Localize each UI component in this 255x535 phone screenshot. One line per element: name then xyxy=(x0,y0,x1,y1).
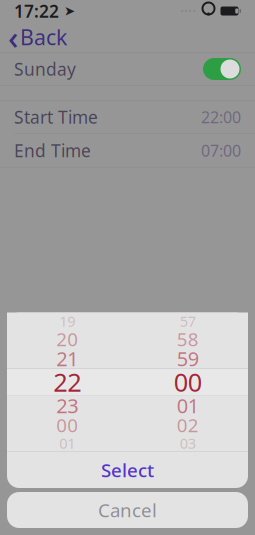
button[interactable]: Select xyxy=(7,452,248,488)
staticText: Select xyxy=(101,458,154,482)
staticText: 22 xyxy=(53,365,81,399)
staticText: 19 xyxy=(59,311,75,331)
staticText: 57 xyxy=(180,311,196,331)
staticText: Sunday xyxy=(14,57,76,80)
staticText: 07:00 xyxy=(201,140,241,161)
staticText: 20 xyxy=(56,327,78,351)
staticText: 00 xyxy=(56,413,78,437)
button[interactable]: End Time xyxy=(0,134,255,167)
staticText: ‹ xyxy=(8,16,18,58)
staticText: ➤ xyxy=(59,3,75,18)
staticText: 58 xyxy=(177,327,199,351)
button[interactable]: Start Time xyxy=(0,100,255,133)
staticText: 03 xyxy=(180,433,196,453)
staticText: 22:00 xyxy=(201,106,241,128)
staticText: 59 xyxy=(177,345,199,372)
staticText: 02 xyxy=(177,413,199,437)
staticText: 01 xyxy=(177,392,199,419)
staticText: 23 xyxy=(56,392,78,419)
staticText: 01 xyxy=(59,433,75,453)
staticText: 21 xyxy=(56,345,78,372)
staticText: End Time xyxy=(14,139,91,162)
staticText: Cancel xyxy=(98,498,157,522)
staticText: Back xyxy=(20,23,67,51)
staticText: 00 xyxy=(174,365,202,399)
button[interactable]: ‹ xyxy=(0,22,255,52)
button[interactable]: Cancel xyxy=(7,492,248,528)
staticText: Start Time xyxy=(14,105,98,128)
button[interactable]: Sunday enabled xyxy=(203,58,241,80)
staticText: 17:22 xyxy=(14,0,59,22)
